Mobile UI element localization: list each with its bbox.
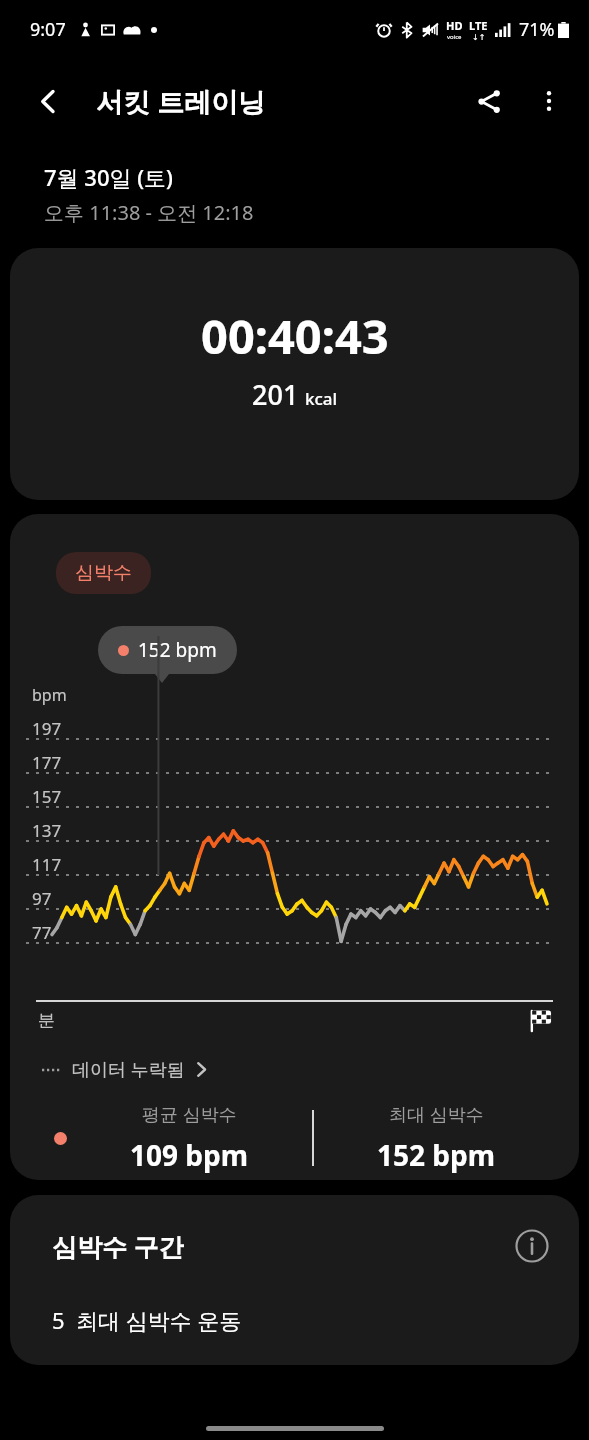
staticText: 5 최대 심박수 운동 [52, 1305, 242, 1335]
staticText: 데이터 누락됨 [72, 1057, 185, 1082]
staticText: 117 [32, 853, 62, 876]
staticText: 71% [519, 17, 555, 42]
staticText: 오후 11:38 - 오전 12:18 [44, 199, 254, 226]
staticText: 최대 심박수 [389, 1102, 484, 1127]
staticText: ↓↑ [472, 33, 486, 42]
staticText: bpm [32, 684, 67, 706]
staticText: kcal [305, 387, 338, 410]
staticText: 197 [32, 717, 62, 740]
staticText: 109 bpm [130, 1136, 249, 1174]
staticText: HD [446, 18, 463, 33]
staticText: LTE [469, 18, 488, 33]
staticText: 심박수 구간 [52, 1229, 184, 1263]
staticText: 201 [252, 376, 299, 413]
button[interactable]: 00:40:43 [10, 248, 579, 500]
staticText: 심박수 [75, 561, 132, 585]
staticText: 177 [32, 751, 62, 774]
staticText: 분 [38, 1010, 55, 1031]
staticText: voice [447, 33, 462, 41]
staticText: 7월 30일 (토) [44, 162, 173, 192]
button[interactable]: 심박수 [56, 552, 151, 594]
button[interactable]: Info [511, 1225, 553, 1267]
button[interactable]: Laps [525, 1005, 555, 1035]
staticText: 152 bpm [138, 637, 217, 663]
staticText: 97 [32, 887, 52, 910]
staticText: 서킷 트레이닝 [96, 83, 266, 120]
staticText: 00:40:43 [201, 304, 389, 368]
staticText: 157 [32, 785, 62, 808]
button[interactable]: More options [523, 75, 575, 127]
staticText: 152 bpm [377, 1136, 496, 1174]
button[interactable]: 데이터 누락됨 [42, 1057, 209, 1082]
button[interactable]: Back [22, 75, 74, 127]
staticText: 9:07 [30, 17, 66, 42]
button[interactable]: Share [463, 75, 515, 127]
staticText: 77 [32, 921, 52, 944]
staticText: 137 [32, 819, 62, 842]
staticText: 평균 심박수 [142, 1102, 237, 1127]
